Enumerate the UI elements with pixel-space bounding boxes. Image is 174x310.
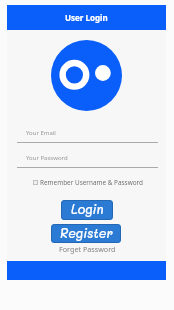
staticText: User Login bbox=[65, 12, 108, 23]
staticText: Remember Username & Password bbox=[40, 178, 143, 187]
staticText: Register bbox=[60, 225, 113, 241]
button[interactable]: User Login title bar bbox=[7, 5, 166, 30]
staticText: Your Email bbox=[26, 129, 56, 137]
button[interactable]: Remember Username & Password bbox=[33, 178, 143, 187]
button[interactable]: Register bbox=[51, 224, 121, 243]
staticText: Login bbox=[71, 201, 104, 217]
staticText: Your Password bbox=[26, 154, 68, 162]
button[interactable]: Login bbox=[61, 200, 113, 220]
other: App logo bbox=[50, 40, 123, 111]
button[interactable]: Forget Password bbox=[59, 244, 116, 254]
